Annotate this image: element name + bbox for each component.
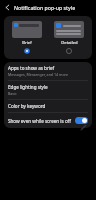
button[interactable]: Apps to show as brief: [4, 62, 92, 80]
staticText: Notification pop-up style: [14, 4, 76, 11]
staticText: Basic: [8, 91, 17, 96]
staticText: Apps to show as brief: [8, 65, 55, 71]
staticText: Edge lighting style: [8, 84, 48, 90]
button[interactable]: Detailed: [50, 20, 88, 55]
button[interactable]: Show even while screen is off: [4, 113, 92, 128]
button[interactable]: Color by keyword: [4, 100, 92, 112]
button[interactable]: Back: [0, 0, 14, 14]
staticText: Detailed: [61, 40, 78, 46]
staticText: Brief: [22, 40, 32, 46]
button[interactable]: Edge lighting style: [4, 81, 92, 99]
staticText: Show even while screen is off: [8, 118, 72, 124]
button[interactable]: Brief: [8, 20, 46, 55]
staticText: Color by keyword: [8, 103, 46, 109]
staticText: Messages, Messenger, and 14 more: [8, 72, 69, 77]
button[interactable]: Edit: [76, 120, 90, 134]
